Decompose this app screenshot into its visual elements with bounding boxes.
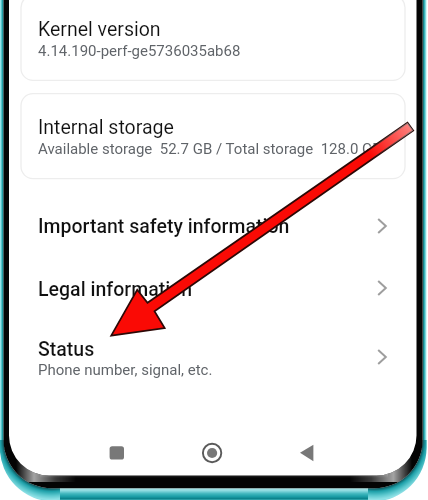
button[interactable]: Back: [295, 438, 325, 468]
staticText: Available storage 52.7 GB / Total storag…: [38, 140, 382, 158]
button[interactable]: [0, 328, 428, 392]
staticText: Important safety information: [38, 215, 290, 238]
staticText: Phone number, signal, etc.: [38, 361, 213, 379]
button[interactable]: [0, 264, 428, 324]
staticText: Internal storage: [38, 116, 174, 139]
staticText: Kernel version: [38, 18, 161, 41]
staticText: Status: [38, 338, 95, 361]
button[interactable]: Home: [197, 438, 227, 468]
button[interactable]: [21, 0, 405, 80]
staticText: Legal information: [38, 278, 193, 301]
button[interactable]: [21, 94, 405, 179]
button[interactable]: [0, 200, 428, 260]
button[interactable]: Recent apps: [101, 438, 131, 468]
staticText: 4.14.190-perf-ge5736035ab68: [38, 42, 241, 60]
